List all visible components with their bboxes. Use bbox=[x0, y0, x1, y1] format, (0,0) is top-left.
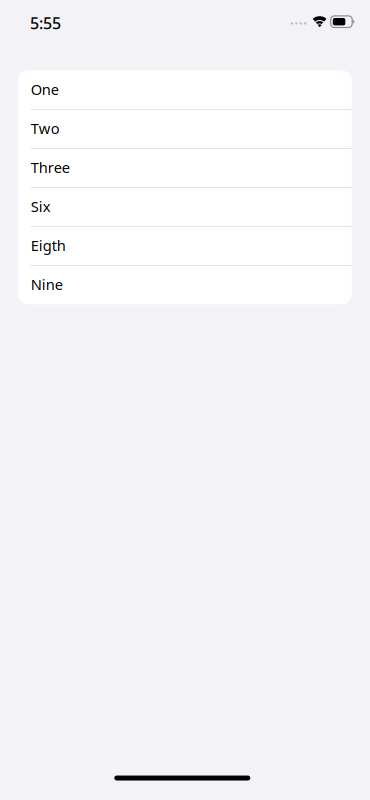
staticText: Six bbox=[31, 196, 51, 216]
staticText: Two bbox=[31, 118, 60, 138]
staticText: One bbox=[31, 79, 59, 99]
staticText: Nine bbox=[31, 274, 63, 294]
staticText: 5:55 bbox=[30, 12, 61, 34]
staticText: Three bbox=[31, 157, 70, 177]
staticText: Eigth bbox=[31, 235, 66, 255]
